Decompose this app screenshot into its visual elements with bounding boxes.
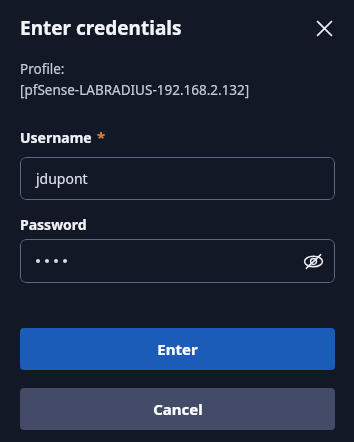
staticText: Username xyxy=(20,128,92,147)
button[interactable]: Cancel xyxy=(20,388,335,430)
staticText: [pfSense-LABRADIUS-192.168.2.132] xyxy=(20,81,250,99)
staticText: Password xyxy=(20,215,87,234)
staticText: Enter credentials xyxy=(20,15,182,41)
button[interactable]: Show password xyxy=(20,239,335,283)
button[interactable]: Show password xyxy=(296,244,330,278)
staticText: jdupont xyxy=(36,169,88,188)
button[interactable]: jdupont xyxy=(20,157,335,200)
staticText: * xyxy=(97,127,106,147)
staticText: Cancel xyxy=(153,399,203,419)
staticText: Profile: xyxy=(20,60,65,78)
staticText: Enter xyxy=(157,339,198,359)
button[interactable]: Close xyxy=(304,8,344,48)
button[interactable]: Enter xyxy=(20,328,335,370)
